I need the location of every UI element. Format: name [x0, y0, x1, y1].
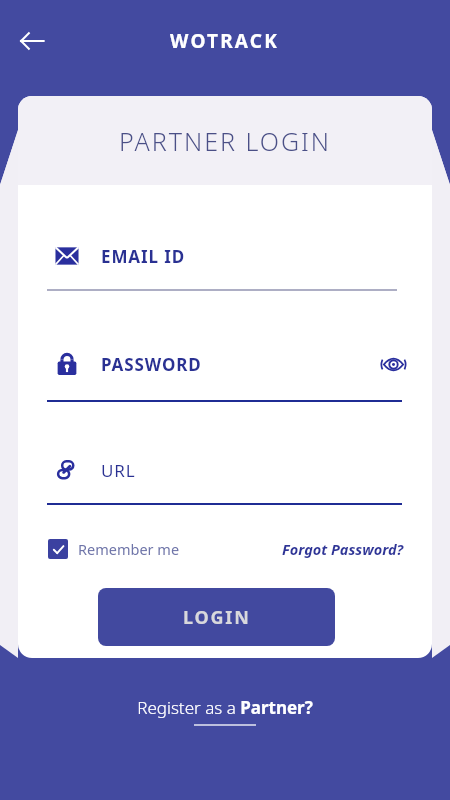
button[interactable]: Remember me [48, 539, 180, 559]
staticText: LOGIN [183, 605, 251, 630]
staticText: EMAIL ID [101, 245, 186, 268]
staticText: PARTNER LOGIN [119, 124, 332, 158]
staticText: URL [101, 459, 136, 482]
button[interactable]: Back [8, 17, 56, 65]
staticText: Forgot Password? [282, 539, 404, 559]
button[interactable]: LOGIN [98, 588, 335, 646]
button[interactable]: Show password [378, 349, 408, 379]
staticText: Register as a Partner? [137, 696, 313, 719]
staticText: Remember me [78, 539, 180, 559]
staticText: PASSWORD [101, 353, 202, 376]
button[interactable]: Forgot Password? [282, 539, 404, 559]
button[interactable]: Register as a Partner? [137, 696, 313, 726]
staticText: WOTRACK [170, 28, 280, 54]
